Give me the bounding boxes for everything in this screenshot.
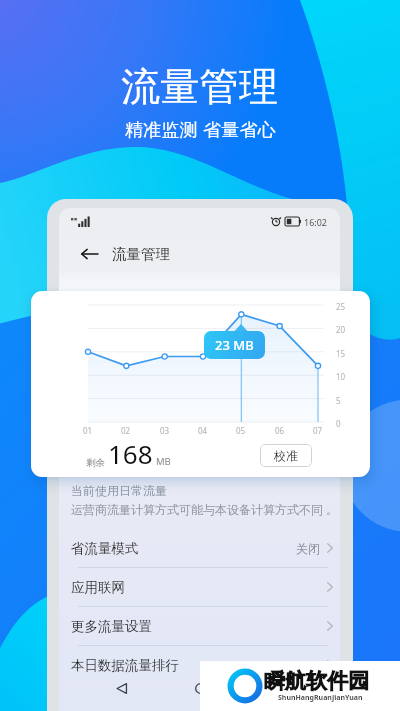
staticText: ShunHangRuanJianYuan (278, 693, 363, 703)
button[interactable]: Back (110, 677, 132, 699)
staticText: 瞬航软件园 (264, 668, 369, 694)
staticText: 168 (108, 436, 153, 471)
staticText: 流量管理 (112, 245, 170, 263)
button[interactable]: Home (189, 677, 211, 699)
staticText: 运营商流量计算方式可能与本设备计算方式不同 。 (71, 501, 339, 517)
staticText: 03 (160, 425, 170, 436)
staticText: 关闭 (296, 541, 320, 556)
staticText: 02 (121, 425, 131, 436)
staticText: 23 MB (215, 336, 254, 354)
staticText: 应用联网 (71, 579, 125, 596)
staticText: 25 (336, 301, 346, 312)
staticText: 5 (336, 395, 341, 406)
staticText: MB (156, 455, 171, 468)
staticText: 20 (336, 324, 346, 335)
staticText: 16:02 (304, 216, 328, 228)
staticText: 精准监测 省量省心 (125, 117, 276, 142)
button[interactable]: Back (77, 242, 101, 266)
button[interactable]: 校准 (260, 444, 312, 467)
staticText: 校准 (274, 448, 298, 463)
button[interactable]: 更多流量设置 (59, 607, 340, 645)
staticText: 剩余 (86, 457, 105, 469)
staticText: 10 (336, 371, 346, 382)
staticText: 本日数据流量排行 (71, 657, 179, 674)
staticText: 0 (336, 418, 341, 429)
staticText: 更多流量设置 (71, 618, 152, 635)
button[interactable]: 省流量模式 (59, 529, 340, 567)
staticText: 15 (336, 348, 346, 359)
staticText: 04 (198, 425, 208, 436)
button[interactable]: 应用联网 (59, 568, 340, 606)
staticText: 01 (83, 425, 93, 436)
staticText: 05 (236, 425, 246, 436)
staticText: 省流量模式 (71, 540, 139, 557)
staticText: 流量管理 (121, 62, 279, 111)
staticText: 07 (313, 425, 323, 436)
staticText: 06 (275, 425, 285, 436)
button[interactable]: 本日数据流量排行 (59, 646, 340, 684)
button[interactable]: Recents (269, 677, 291, 699)
staticText: 当前使用日常流量 (71, 483, 167, 498)
